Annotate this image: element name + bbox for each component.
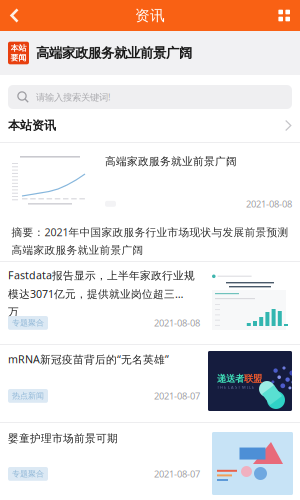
staticText: 递送者: [217, 373, 244, 384]
button[interactable]: mRNA新冠疫苗背后的“无名英雄”: [0, 345, 300, 423]
button[interactable]: Fastdata报告显示，上半年家政行业规 模达3071亿元，提供就业岗位超三……: [0, 262, 300, 345]
button[interactable]: 本站资讯: [0, 109, 300, 143]
staticText: 资讯: [135, 6, 165, 24]
staticText: Fastdata报告显示，上半年家政行业规 模达3071亿元，提供就业岗位超三……: [8, 268, 195, 318]
staticText: 专题聚合: [12, 318, 44, 328]
staticText: 要闻: [10, 53, 26, 63]
staticText: 2021-08-07: [154, 390, 200, 402]
staticText: 摘要：2021年中国家政服务行业市场现状与发展前景预测 高端家政服务就业前景广阔: [11, 225, 288, 257]
staticText: 请输入搜索关键词!: [36, 91, 111, 103]
staticText: 婴童护理市场前景可期: [8, 432, 118, 445]
button[interactable]: 请输入搜索关键词!: [0, 75, 300, 109]
button[interactable]: Categories: [268, 0, 300, 31]
staticText: 2021-08-08: [246, 198, 292, 210]
staticText: 高端家政服务就业前景广阔: [36, 45, 192, 61]
button[interactable]: 高端家政服务就业前景广阔: [0, 143, 300, 212]
button[interactable]: 婴童护理市场前景可期: [0, 423, 300, 500]
staticText: 联盟: [244, 373, 262, 384]
staticText: 本站: [10, 43, 26, 53]
staticText: 高端家政服务就业前景广阔: [105, 155, 237, 168]
button[interactable]: Back: [0, 0, 29, 31]
staticText: T H E L A S T M I L E: [217, 384, 254, 390]
staticText: 热点新闻: [12, 391, 44, 401]
staticText: mRNA新冠疫苗背后的“无名英雄”: [8, 352, 169, 366]
staticText: 2021-08-08: [154, 317, 200, 329]
staticText: 专题聚合: [12, 469, 44, 479]
staticText: 本站资讯: [8, 118, 56, 133]
button[interactable]: 摘要：2021年中国家政服务行业市场现状与发展前景预测 高端家政服务就业前景广阔: [0, 212, 300, 262]
staticText: 2021-08-07: [154, 468, 200, 480]
button[interactable]: 本站: [0, 31, 300, 75]
